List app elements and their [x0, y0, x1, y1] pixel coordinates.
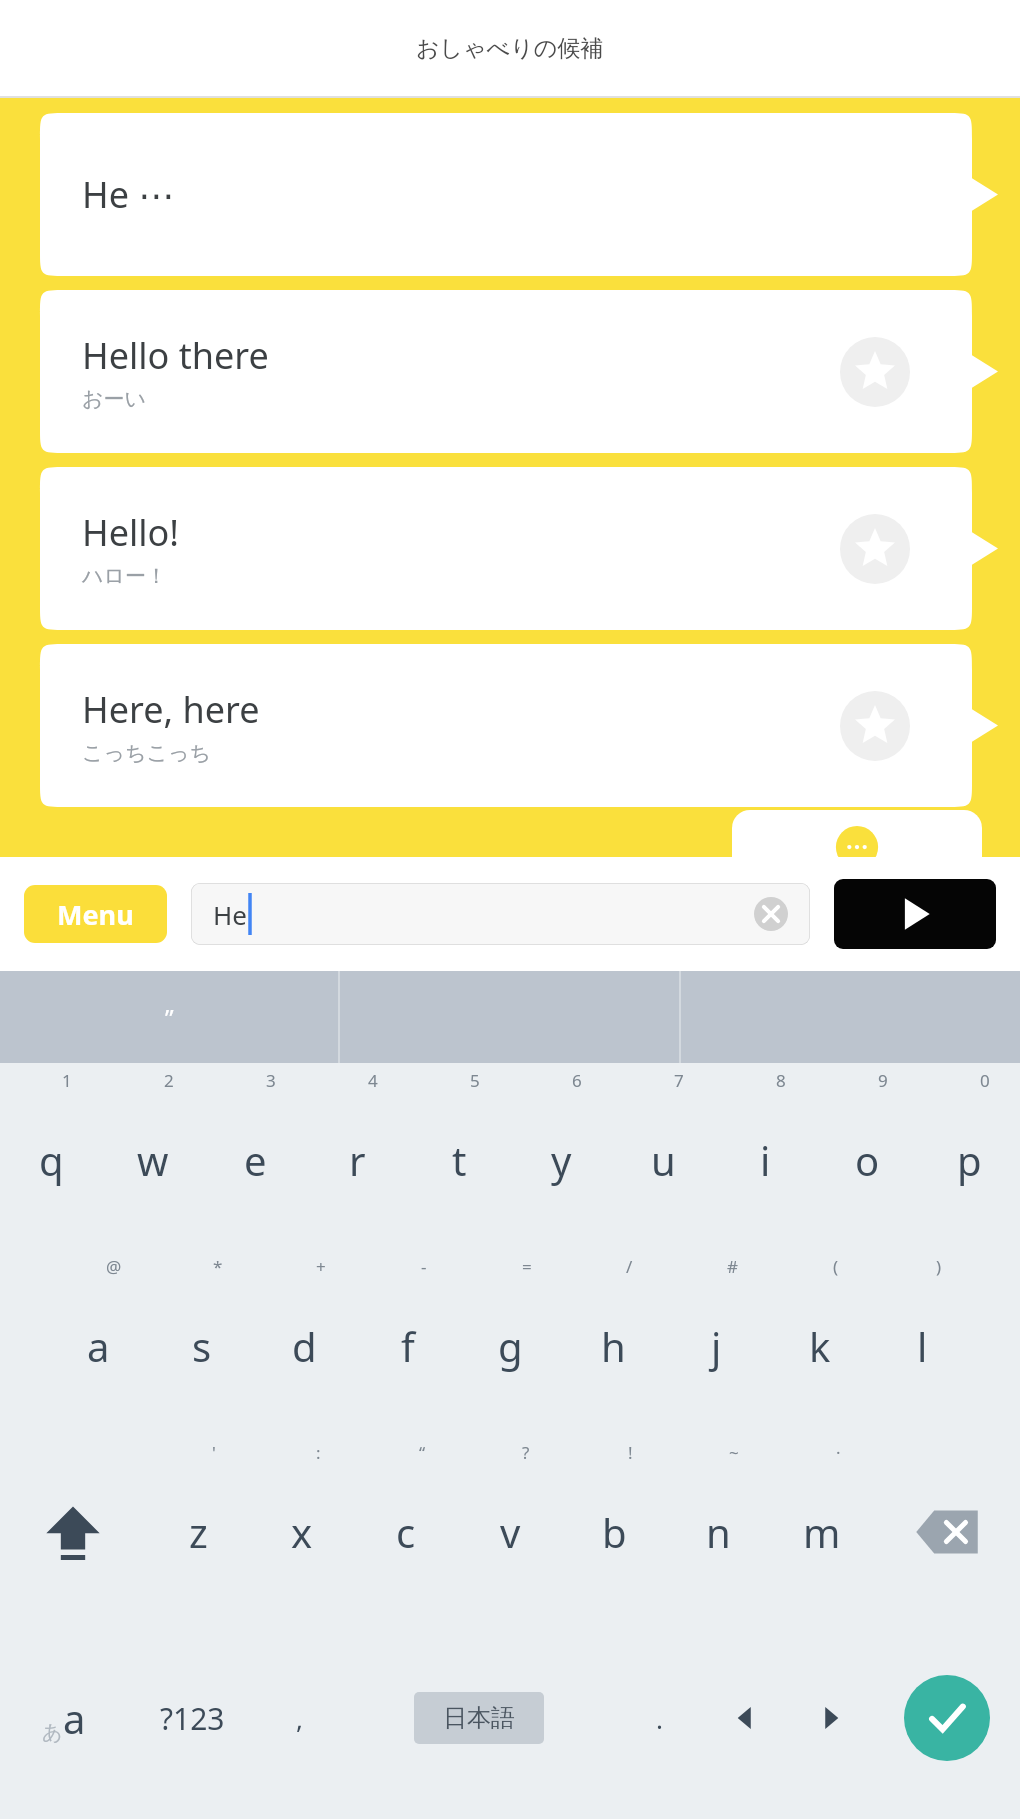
button[interactable]: 8	[714, 1067, 816, 1253]
button[interactable]: 1	[0, 1067, 102, 1253]
staticText: あ	[42, 1720, 63, 1745]
button[interactable]: Favorite	[840, 514, 910, 584]
button[interactable]: 5	[408, 1067, 510, 1253]
button[interactable]: ?123	[128, 1625, 256, 1811]
staticText: ?123	[160, 1698, 225, 1739]
button[interactable]: +	[253, 1253, 356, 1439]
button[interactable]: Ken	[732, 810, 982, 945]
button[interactable]: !	[562, 1439, 666, 1625]
button[interactable]: Favorite	[840, 337, 910, 407]
button[interactable]: 日本語	[342, 1625, 616, 1811]
button[interactable]: /	[562, 1253, 665, 1439]
button[interactable]: ~	[666, 1439, 770, 1625]
staticText: おーい	[82, 386, 146, 412]
button[interactable]: ·	[770, 1439, 874, 1625]
button[interactable]: 7	[612, 1067, 714, 1253]
staticText: s	[192, 1319, 212, 1373]
button[interactable]: .	[616, 1625, 702, 1811]
button[interactable]: )	[871, 1253, 974, 1439]
button[interactable]: Here, here	[40, 644, 998, 807]
button[interactable]: Menu	[24, 885, 167, 943]
staticText: 6	[572, 1069, 582, 1092]
staticText: =	[522, 1255, 532, 1278]
staticText: Ken	[834, 880, 880, 914]
staticText: @	[106, 1255, 122, 1278]
button[interactable]: ?	[458, 1439, 562, 1625]
staticText: j	[711, 1319, 722, 1373]
staticText: 4	[368, 1069, 378, 1092]
button[interactable]: 9	[816, 1067, 918, 1253]
staticText: .	[656, 1701, 663, 1736]
staticText: #	[727, 1255, 738, 1278]
button[interactable]: -	[356, 1253, 459, 1439]
staticText: 7	[674, 1069, 684, 1092]
button[interactable]: ,	[256, 1625, 342, 1811]
staticText: 1	[62, 1069, 72, 1092]
staticText: ,	[296, 1701, 303, 1736]
button[interactable]: =	[459, 1253, 562, 1439]
button[interactable]: 2	[102, 1067, 204, 1253]
staticText: 9	[878, 1069, 888, 1092]
staticText: おしゃべりの候補	[416, 34, 604, 63]
staticText: n	[706, 1505, 731, 1559]
button[interactable]: (	[768, 1253, 871, 1439]
button[interactable]: “	[354, 1439, 458, 1625]
staticText: o	[855, 1133, 880, 1187]
button[interactable]: *	[150, 1253, 253, 1439]
staticText: 5	[470, 1069, 480, 1092]
staticText: :	[316, 1441, 321, 1464]
button[interactable]: :	[250, 1439, 354, 1625]
button[interactable]: Move cursor left	[702, 1625, 788, 1811]
staticText: +	[316, 1255, 326, 1278]
staticText: b	[602, 1505, 627, 1559]
staticText: 0	[980, 1069, 990, 1092]
staticText: /	[626, 1255, 633, 1278]
button[interactable]: '	[146, 1439, 250, 1625]
button[interactable]: Play	[834, 879, 996, 949]
button[interactable]: Hello!	[40, 467, 998, 630]
button[interactable]: Confirm	[874, 1625, 1020, 1811]
staticText: e	[244, 1133, 267, 1187]
staticText: c	[396, 1505, 416, 1559]
staticText: r	[349, 1133, 366, 1187]
staticText: p	[957, 1133, 982, 1187]
staticText: Hello!	[82, 508, 180, 557]
button[interactable]: #	[665, 1253, 768, 1439]
button[interactable]: 3	[204, 1067, 306, 1253]
button[interactable]: Favorite	[840, 691, 910, 761]
staticText: Hello there	[82, 331, 269, 380]
button[interactable]: He	[191, 883, 810, 945]
staticText: a	[63, 1691, 86, 1745]
button[interactable]: 4	[306, 1067, 408, 1253]
staticText: He ⋯	[82, 170, 175, 219]
staticText: ”	[165, 1001, 174, 1034]
staticText: u	[651, 1133, 676, 1187]
staticText: )	[936, 1255, 942, 1278]
staticText: (	[833, 1255, 839, 1278]
button[interactable]: @	[46, 1253, 150, 1439]
button[interactable]: Hello there	[40, 290, 998, 453]
staticText: i	[760, 1133, 771, 1187]
button[interactable]: Clear text	[754, 897, 788, 931]
staticText: d	[292, 1319, 317, 1373]
staticText: t	[452, 1133, 467, 1187]
button[interactable]: あ	[0, 1625, 128, 1811]
staticText: k	[809, 1319, 831, 1373]
button[interactable]: Move cursor right	[788, 1625, 874, 1811]
button[interactable]: 0	[918, 1067, 1020, 1253]
staticText: g	[498, 1319, 523, 1373]
button[interactable]: Backspace	[874, 1439, 1020, 1625]
button[interactable]: He ⋯	[40, 113, 998, 276]
staticText: f	[401, 1319, 415, 1373]
staticText: h	[601, 1319, 626, 1373]
staticText: Menu	[57, 896, 134, 933]
button[interactable]: Shift	[0, 1439, 146, 1625]
staticText: y	[551, 1133, 572, 1187]
staticText: w	[137, 1133, 169, 1187]
staticText: こっちこっち	[82, 740, 211, 766]
staticText: !	[628, 1441, 633, 1464]
button[interactable]: 6	[510, 1067, 612, 1253]
